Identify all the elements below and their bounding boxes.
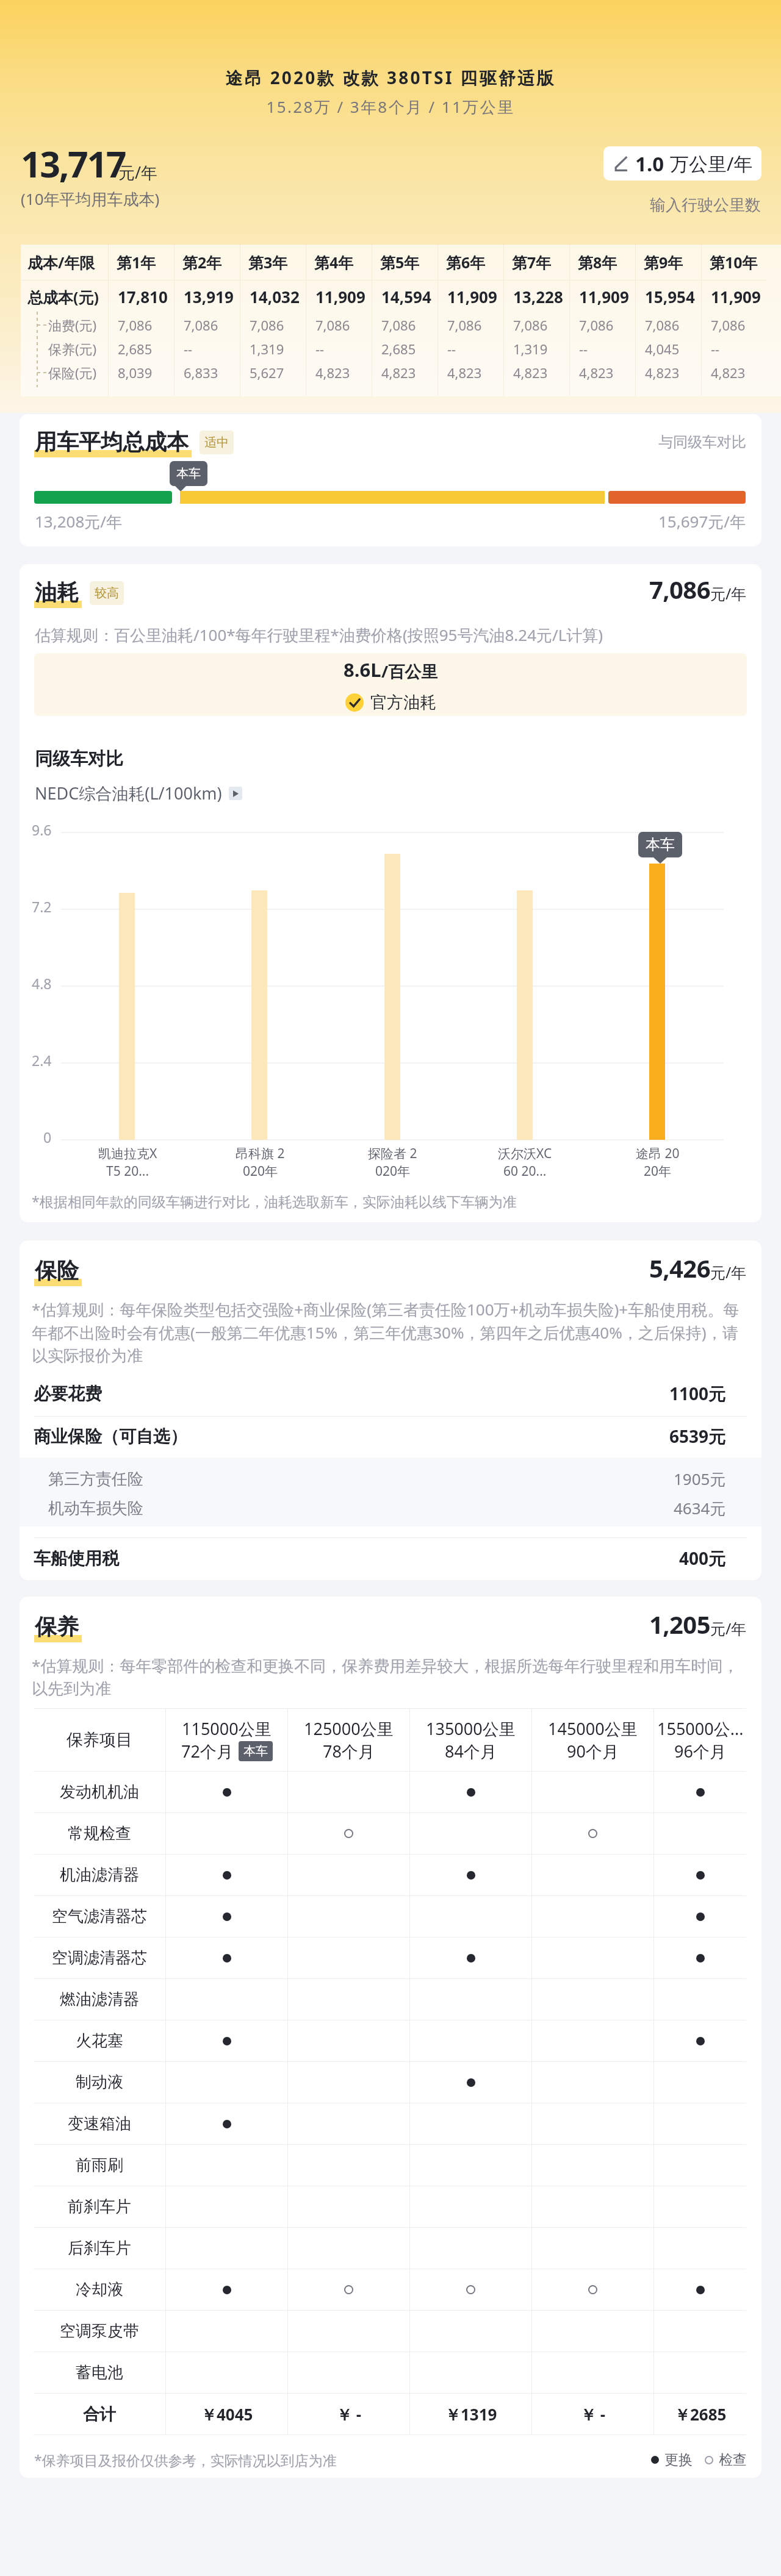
- staticText: 保险: [35, 1257, 79, 1284]
- staticText: ￥ -: [336, 2403, 362, 2425]
- staticText: ￥2685: [674, 2403, 727, 2425]
- staticText: 适中: [204, 435, 229, 450]
- staticText: 1,319: [513, 340, 548, 358]
- staticText: *估算规则：每年保险类型包括交强险+商业保险(第三者责任险100万+机动车损失险…: [32, 1298, 750, 1365]
- staticText: 9.6: [32, 820, 52, 839]
- staticText: 本车: [646, 835, 675, 854]
- staticText: 第5年: [380, 252, 420, 273]
- staticText: 第8年: [578, 252, 617, 273]
- staticText: 7,086: [649, 573, 710, 606]
- staticText: 145000公里: [548, 1717, 638, 1740]
- staticText: 7,086: [579, 316, 614, 334]
- staticText: 7,086: [513, 316, 548, 334]
- staticText: 7,086: [315, 316, 350, 334]
- staticText: 4,823: [711, 363, 746, 382]
- staticText: 155000公...: [657, 1717, 744, 1740]
- staticText: 本车: [176, 466, 201, 481]
- staticText: 第2年: [182, 252, 222, 273]
- staticText: 本车: [243, 1744, 268, 1759]
- staticText: 空气滤清器芯: [52, 1906, 147, 1927]
- staticText: 前刹车片: [68, 2197, 131, 2217]
- staticText: 万公里/年: [670, 151, 753, 176]
- staticText: 6539元: [669, 1425, 726, 1448]
- staticText: 第6年: [446, 252, 486, 273]
- staticText: 合计: [83, 2404, 116, 2425]
- staticText: 第三方责任险: [48, 1469, 143, 1489]
- other: 编辑行驶公里数: [613, 156, 628, 171]
- staticText: 1905元: [674, 1468, 726, 1490]
- staticText: 11,909: [447, 286, 497, 307]
- staticText: 7,086: [381, 316, 416, 334]
- staticText: 1,205: [649, 1608, 710, 1640]
- button[interactable]: 编辑行驶公里数: [603, 146, 761, 181]
- staticText: 7,086: [118, 316, 153, 334]
- staticText: 135000公里: [426, 1717, 516, 1740]
- staticText: 探险者 2: [368, 1145, 417, 1162]
- staticText: 元/年: [118, 161, 158, 184]
- staticText: 用车平均总成本: [35, 428, 189, 456]
- staticText: 84个月: [445, 1740, 497, 1762]
- staticText: 11,909: [711, 286, 761, 307]
- staticText: 第3年: [248, 252, 288, 273]
- staticText: 元/年: [710, 1618, 747, 1639]
- staticText: 11,909: [579, 286, 629, 307]
- staticText: --: [315, 340, 325, 358]
- staticText: 78个月: [323, 1740, 375, 1762]
- staticText: 5,426: [649, 1251, 710, 1284]
- staticText: 保养: [35, 1613, 79, 1640]
- staticText: 5,627: [250, 363, 284, 382]
- staticText: --: [447, 340, 456, 358]
- staticText: --: [184, 340, 193, 358]
- staticText: --: [579, 340, 588, 358]
- button[interactable]: 必要花费: [20, 1375, 761, 1412]
- staticText: 元/年: [710, 583, 747, 604]
- staticText: 13,717: [21, 139, 126, 188]
- staticText: 0: [43, 1128, 52, 1147]
- staticText: 13,228: [513, 286, 563, 307]
- staticText: 途昂 2020款 改款 380TSI 四驱舒适版: [0, 66, 781, 89]
- staticText: 2,685: [381, 340, 416, 358]
- staticText: 成本/年限: [27, 252, 95, 273]
- staticText: 车船使用税: [34, 1548, 119, 1569]
- staticText: 常规检查: [68, 1823, 131, 1844]
- staticText: 空调滤清器芯: [52, 1948, 147, 1968]
- staticText: 4,823: [315, 363, 350, 382]
- staticText: *估算规则：每年零部件的检查和更换不同，保养费用差异较大，根据所选每年行驶里程和…: [32, 1655, 750, 1698]
- staticText: 4,823: [381, 363, 416, 382]
- staticText: 沃尔沃XC: [498, 1145, 552, 1162]
- staticText: 90个月: [567, 1740, 619, 1762]
- staticText: 总成本(元): [27, 287, 99, 307]
- staticText: 14,032: [250, 286, 300, 307]
- staticText: 6,833: [184, 363, 218, 382]
- staticText: 2.4: [32, 1051, 52, 1070]
- staticText: 125000公里: [304, 1717, 394, 1740]
- staticText: 8,039: [118, 363, 153, 382]
- staticText: 17,810: [118, 286, 168, 307]
- staticText: ￥ -: [580, 2403, 606, 2425]
- staticText: /百公里: [381, 660, 438, 682]
- staticText: 第4年: [314, 252, 354, 273]
- staticText: 11,909: [315, 286, 365, 307]
- staticText: 输入行驶公里数: [0, 195, 761, 215]
- staticText: 4634元: [674, 1497, 726, 1519]
- staticText: 4,823: [447, 363, 482, 382]
- staticText: 发动机机油: [60, 1782, 139, 1802]
- button[interactable]: 车船使用税: [20, 1539, 761, 1577]
- staticText: 必要花费: [34, 1383, 102, 1404]
- staticText: 1100元: [669, 1382, 726, 1405]
- button[interactable]: 商业保险（可自选）: [20, 1417, 761, 1455]
- staticText: --: [711, 340, 720, 358]
- staticText: 020年: [375, 1162, 411, 1180]
- staticText: 保养(元): [48, 340, 97, 358]
- staticText: 15,954: [645, 286, 695, 307]
- staticText: 72个月: [181, 1740, 233, 1762]
- staticText: 油费(元): [48, 316, 97, 334]
- staticText: 第10年: [710, 252, 758, 273]
- staticText: 检查: [719, 2451, 747, 2469]
- staticText: 96个月: [674, 1740, 726, 1762]
- staticText: 机动车损失险: [48, 1498, 143, 1519]
- staticText: 同级车对比: [35, 748, 123, 770]
- staticText: 2,685: [118, 340, 153, 358]
- staticText: ￥1319: [445, 2403, 497, 2425]
- staticText: 估算规则：百公里油耗/100*每年行驶里程*油费价格(按照95号汽油8.24元/…: [35, 624, 603, 646]
